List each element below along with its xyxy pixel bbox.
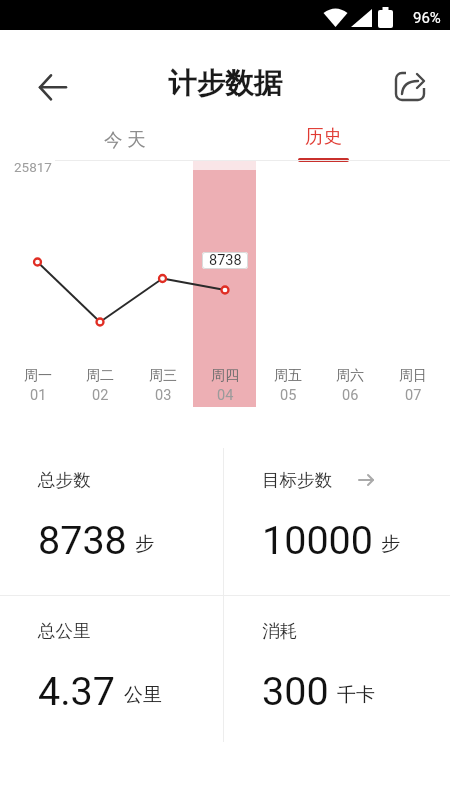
staticText: 周日: [399, 367, 427, 385]
staticText: 02: [92, 387, 109, 404]
staticText: 300: [262, 668, 329, 714]
button[interactable]: 总步数: [38, 469, 208, 515]
staticText: 消耗: [262, 620, 297, 642]
staticText: 周二: [86, 367, 114, 385]
staticText: 25817: [14, 159, 52, 175]
staticText: 01: [30, 387, 47, 404]
staticText: 千卡: [337, 683, 375, 707]
staticText: 周五: [274, 367, 302, 385]
button[interactable]: 目标步数: [262, 469, 432, 515]
staticText: 步: [381, 532, 400, 556]
staticText: 10000: [262, 517, 373, 563]
button[interactable]: [394, 70, 428, 104]
staticText: 4.37: [38, 668, 116, 714]
staticText: 公里: [124, 683, 162, 707]
button[interactable]: 历史: [292, 124, 354, 162]
staticText: 04: [217, 387, 234, 404]
staticText: 总步数: [38, 469, 91, 491]
staticText: 计步数据: [168, 66, 282, 102]
staticText: 8738: [209, 252, 242, 269]
staticText: 历史: [305, 125, 342, 148]
staticText: 03: [155, 387, 172, 404]
button[interactable]: [36, 71, 68, 103]
staticText: 96%: [413, 9, 441, 27]
staticText: 步: [135, 532, 154, 556]
staticText: 总公里: [38, 620, 91, 642]
staticText: 06: [342, 387, 359, 404]
button[interactable]: 消耗: [262, 620, 432, 666]
staticText: 05: [280, 387, 297, 404]
button[interactable]: 总公里: [38, 620, 208, 666]
staticText: 今 天: [104, 128, 146, 151]
staticText: 周一: [24, 367, 52, 385]
staticText: 周四: [211, 367, 239, 385]
staticText: 周六: [336, 367, 364, 385]
staticText: 8738: [38, 517, 127, 563]
button[interactable]: 今 天: [94, 126, 156, 153]
staticText: 周三: [149, 367, 177, 385]
staticText: 目标步数: [262, 469, 332, 491]
staticText: 07: [405, 387, 422, 404]
